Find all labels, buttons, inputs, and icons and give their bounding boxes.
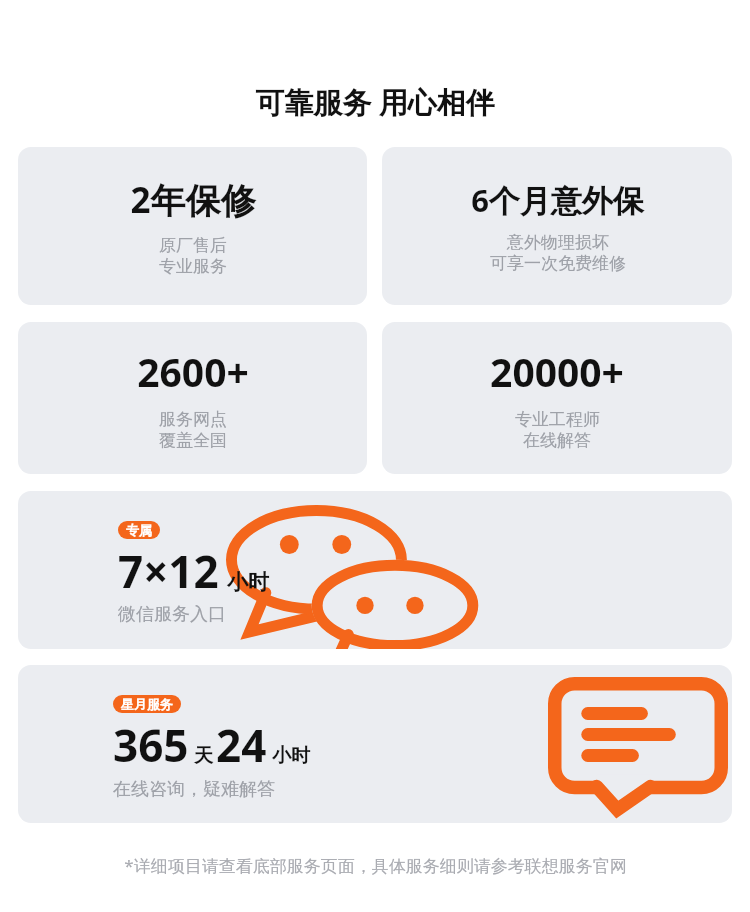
staticText: 7×12	[118, 541, 219, 601]
staticText: 专属	[126, 522, 152, 538]
staticText: 星月服务	[121, 696, 173, 712]
staticText: 意外物理损坏	[507, 232, 609, 253]
button[interactable]: 微信服务入口	[18, 491, 732, 649]
staticText: 在线解答	[523, 430, 591, 451]
staticText: 6个月意外保	[471, 179, 644, 221]
staticText: 可享一次免费维修	[490, 253, 626, 274]
staticText: 小时	[227, 569, 269, 595]
staticText: 2600+	[137, 345, 249, 398]
staticText: 可靠服务 用心相伴	[255, 82, 495, 122]
staticText: 24	[216, 715, 267, 775]
staticText: *详细项目请查看底部服务页面，具体服务细则请参考联想服务官网	[124, 854, 627, 877]
staticText: 20000+	[490, 345, 624, 398]
staticText: 微信服务入口	[118, 603, 226, 626]
button[interactable]: 20000+	[382, 322, 732, 474]
staticText: 2年保修	[130, 176, 256, 224]
staticText: 覆盖全国	[159, 430, 227, 451]
staticText: 服务网点	[159, 409, 227, 430]
other: 微信服务入口	[226, 499, 464, 649]
button[interactable]: 2600+	[18, 322, 367, 474]
staticText: 365	[113, 715, 189, 775]
staticText: 小时	[272, 744, 310, 768]
other: 在线咨询	[548, 677, 728, 817]
staticText: 专业服务	[159, 256, 227, 277]
button[interactable]: 6个月意外保	[382, 147, 732, 305]
staticText: 专业工程师	[515, 409, 600, 430]
button[interactable]: 2年保修	[18, 147, 367, 305]
button[interactable]: 在线咨询	[18, 665, 732, 823]
staticText: 在线咨询，疑难解答	[113, 778, 275, 801]
staticText: 天	[194, 744, 213, 768]
staticText: 原厂售后	[159, 235, 227, 256]
